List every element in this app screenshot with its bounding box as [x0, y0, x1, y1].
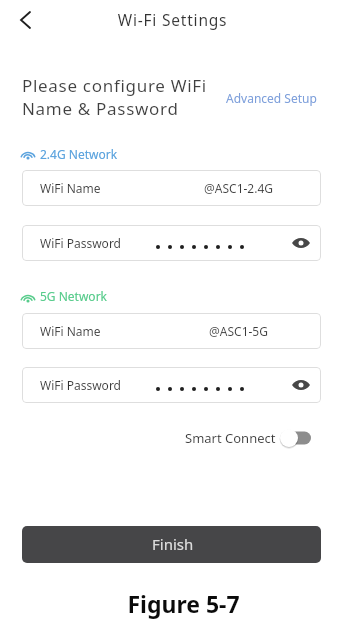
staticText: Figure 5-7: [14, 588, 339, 619]
staticText: Advanced Setup: [226, 90, 317, 106]
staticText: Wi-Fi Settings: [3, 9, 339, 30]
button[interactable]: WiFi Password: [22, 367, 321, 403]
button[interactable]: Smart Connect: [185, 428, 311, 448]
staticText: @ASC1-5G: [209, 323, 268, 339]
button[interactable]: WiFi Name: [22, 170, 321, 206]
staticText: WiFi Name: [40, 323, 101, 339]
button[interactable]: Show password: [289, 231, 313, 255]
staticText: 5G Network: [40, 288, 107, 304]
staticText: WiFi Name: [40, 180, 101, 196]
staticText: Please configure WiFi Name & Password: [22, 74, 207, 120]
button[interactable]: Show password: [289, 373, 313, 397]
button[interactable]: Back: [10, 5, 40, 35]
button[interactable]: WiFi Name: [22, 313, 321, 349]
button[interactable]: Advanced Setup: [222, 87, 321, 109]
button[interactable]: WiFi Password: [22, 225, 321, 261]
staticText: 2.4G Network: [40, 146, 118, 162]
staticText: WiFi Password: [40, 235, 121, 251]
button[interactable]: Finish: [22, 526, 321, 563]
staticText: Smart Connect: [185, 429, 276, 447]
staticText: Finish: [152, 534, 194, 554]
staticText: WiFi Password: [40, 377, 121, 393]
staticText: @ASC1-2.4G: [204, 180, 274, 196]
